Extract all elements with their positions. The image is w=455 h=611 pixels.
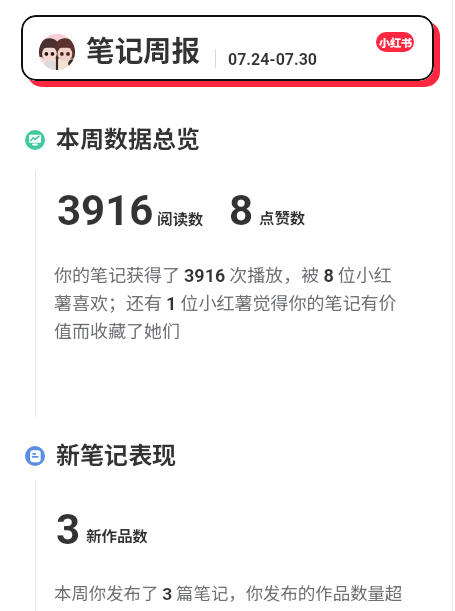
staticText: 8	[229, 186, 254, 235]
staticText: 07.24-07.30	[228, 50, 318, 69]
other: Data overview	[25, 130, 45, 150]
staticText: 你的笔记获得了 3916 次播放，被 8 位小红薯喜欢；还有 1 位小红薯觉得你…	[54, 260, 399, 344]
button[interactable]: 小红书	[376, 32, 414, 52]
button[interactable]: New notes	[25, 446, 45, 466]
staticText: 本周数据总览	[56, 120, 200, 155]
button[interactable]	[21, 15, 434, 81]
staticText: 新笔记表现	[56, 436, 176, 471]
staticText: 笔记周报	[86, 28, 201, 69]
button[interactable]: Data overview	[25, 130, 45, 150]
staticText: 小红书	[379, 34, 412, 50]
staticText: 3	[56, 505, 81, 554]
other: New notes	[25, 446, 45, 466]
staticText: 点赞数	[259, 206, 306, 228]
staticText: 新作品数	[86, 524, 149, 546]
staticText: 阅读数	[157, 207, 204, 229]
staticText: 本周你发布了 3 篇笔记，你发布的作品数量超过了平台 90% 的用户	[54, 578, 409, 611]
staticText: 3916	[57, 186, 154, 235]
